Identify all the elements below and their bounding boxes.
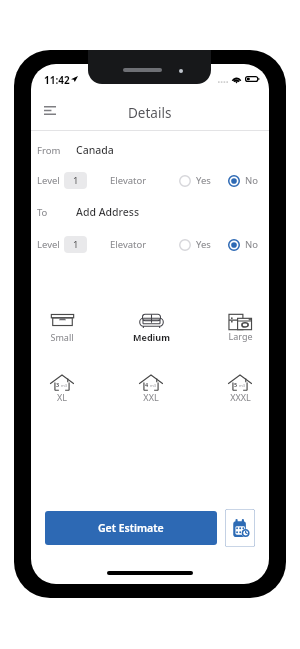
staticText: No [245, 174, 258, 187]
staticText: Level [37, 238, 60, 251]
button[interactable]: 1 [64, 236, 87, 253]
staticText: 5 [234, 381, 238, 388]
button[interactable]: 1 [64, 172, 87, 189]
staticText: Small [50, 331, 74, 343]
button[interactable]: Schedule [225, 509, 255, 547]
staticText: To [37, 206, 48, 219]
button[interactable]: Get Estimate [45, 511, 217, 545]
button[interactable]: XXL [125, 370, 177, 405]
button[interactable]: XXXL [214, 370, 266, 405]
staticText: From [37, 144, 61, 157]
button[interactable]: Large [214, 310, 266, 344]
staticText: Get Estimate [98, 521, 164, 535]
staticText: 1 [73, 174, 79, 187]
staticText: 1 [73, 238, 79, 251]
button[interactable]: No [228, 238, 258, 251]
staticText: Large [228, 330, 253, 342]
staticText: Add Address [76, 205, 139, 219]
button[interactable]: Menu [37, 97, 63, 123]
staticText: 4 [145, 381, 149, 388]
staticText: 3 [56, 381, 60, 388]
staticText: Elevator [110, 238, 147, 251]
button[interactable]: XL [36, 370, 88, 405]
staticText: 11:42 [44, 73, 70, 87]
staticText: XXXL [230, 391, 251, 403]
button[interactable]: Yes [179, 238, 211, 251]
staticText: Details [128, 104, 172, 122]
staticText: Canada [76, 143, 114, 157]
button[interactable]: To [31, 201, 269, 223]
button[interactable]: From [31, 139, 269, 161]
staticText: Yes [196, 174, 211, 187]
staticText: Level [37, 174, 60, 187]
staticText: Yes [196, 238, 211, 251]
staticText: m3 [149, 383, 157, 388]
button[interactable]: Medium [125, 310, 177, 345]
button[interactable]: No [228, 174, 258, 187]
staticText: m3 [60, 383, 68, 388]
staticText: XXL [143, 391, 159, 403]
button[interactable]: Yes [179, 174, 211, 187]
staticText: XL [57, 391, 67, 403]
staticText: No [245, 238, 258, 251]
button[interactable]: Small [36, 310, 88, 345]
staticText: m3 [238, 383, 246, 388]
staticText: Elevator [110, 174, 147, 187]
staticText: Medium [133, 331, 170, 343]
